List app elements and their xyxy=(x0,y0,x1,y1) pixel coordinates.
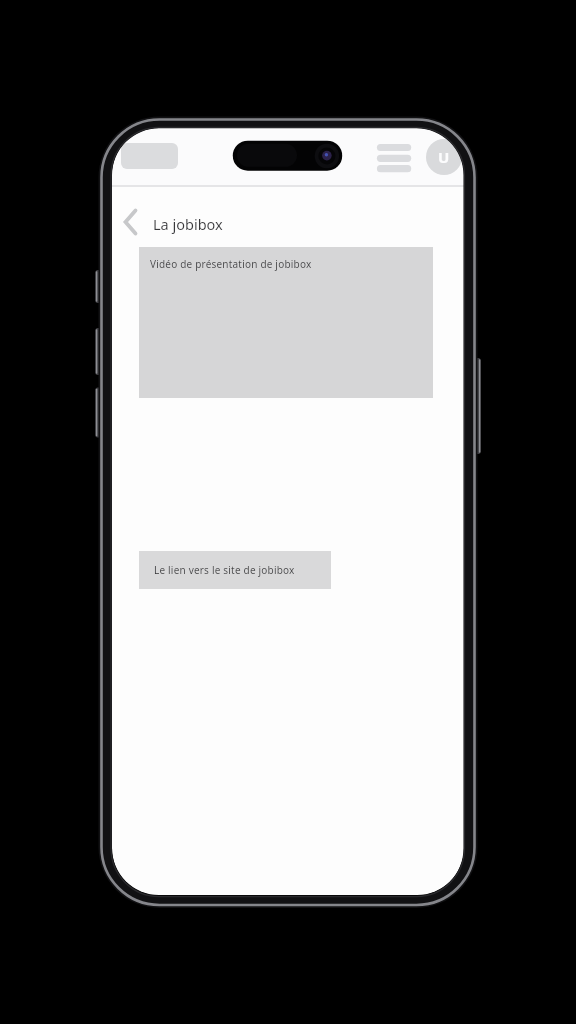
button[interactable]: Vidéo de présentation de jobibox xyxy=(139,247,433,398)
staticText: U xyxy=(438,147,450,167)
staticText: Vidéo de présentation de jobibox xyxy=(150,257,312,271)
staticText: La jobibox xyxy=(153,214,223,234)
button[interactable]: Le lien vers le site de jobibox xyxy=(139,551,331,589)
button[interactable] xyxy=(118,203,146,241)
staticText: Le lien vers le site de jobibox xyxy=(154,563,295,577)
button[interactable] xyxy=(371,138,417,176)
button[interactable]: U xyxy=(426,139,462,175)
